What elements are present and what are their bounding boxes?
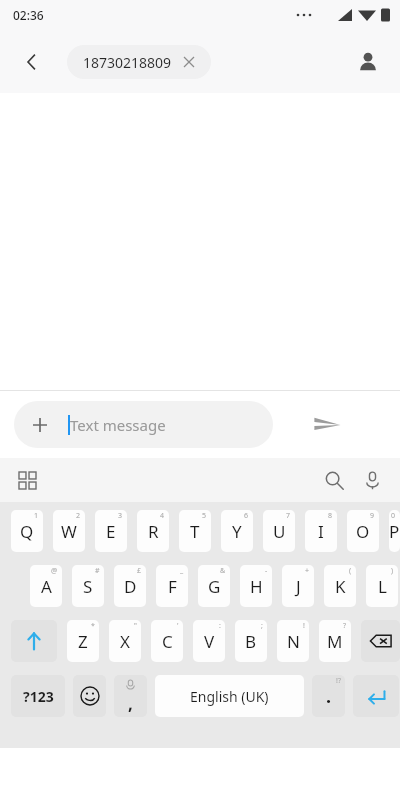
- button[interactable]: ;: [235, 620, 267, 662]
- staticText: C: [162, 630, 173, 653]
- staticText: _: [180, 566, 184, 576]
- staticText: 7: [286, 511, 291, 521]
- button[interactable]: English (UK): [155, 675, 304, 717]
- button[interactable]: Back: [14, 44, 50, 80]
- button[interactable]: *: [67, 620, 99, 662]
- staticText: 1: [34, 511, 39, 521]
- staticText: I: [318, 520, 324, 543]
- button[interactable]: :: [193, 620, 225, 662]
- staticText: ?123: [23, 687, 54, 706]
- staticText: ): [391, 566, 394, 576]
- staticText: @: [51, 566, 58, 576]
- staticText: D: [124, 575, 137, 598]
- staticText: #: [95, 566, 100, 576]
- staticText: 3: [118, 511, 123, 521]
- staticText: 4: [160, 511, 165, 521]
- staticText: A: [41, 575, 52, 598]
- staticText: F: [168, 575, 177, 598]
- staticText: &: [220, 566, 226, 576]
- button[interactable]: 5: [179, 510, 211, 552]
- button[interactable]: Clipboard: [9, 462, 45, 498]
- staticText: ;: [261, 621, 263, 631]
- staticText: :: [219, 621, 221, 631]
- staticText: .: [326, 684, 332, 709]
- button[interactable]: -: [240, 565, 272, 607]
- staticText: +: [305, 566, 310, 576]
- staticText: V: [204, 630, 215, 653]
- staticText: 02:36: [13, 7, 44, 23]
- button[interactable]: Enter: [353, 675, 399, 717]
- staticText: X: [120, 630, 130, 653]
- staticText: W: [61, 520, 77, 543]
- button[interactable]: 18730218809: [67, 45, 211, 79]
- staticText: R: [148, 520, 159, 543]
- button[interactable]: 0: [389, 510, 400, 552]
- button[interactable]: (: [324, 565, 356, 607]
- staticText: K: [335, 575, 346, 598]
- staticText: J: [296, 575, 301, 598]
- staticText: L: [378, 575, 387, 598]
- staticText: 8: [328, 511, 333, 521]
- button[interactable]: !?: [312, 675, 345, 717]
- button[interactable]: 6: [221, 510, 253, 552]
- staticText: S: [83, 575, 93, 598]
- staticText: T: [190, 520, 200, 543]
- button[interactable]: !: [277, 620, 309, 662]
- button[interactable]: Contact: [350, 44, 386, 80]
- button[interactable]: Send: [300, 398, 354, 452]
- staticText: ?: [343, 621, 347, 631]
- button[interactable]: £: [114, 565, 146, 607]
- button[interactable]: Voice input: [353, 461, 391, 499]
- button[interactable]: @: [30, 565, 62, 607]
- button[interactable]: ': [151, 620, 183, 662]
- staticText: *: [91, 621, 95, 631]
- staticText: M: [327, 630, 343, 653]
- button[interactable]: 8: [305, 510, 337, 552]
- staticText: 9: [370, 511, 375, 521]
- button[interactable]: Emoji: [73, 675, 106, 717]
- button[interactable]: 9: [347, 510, 379, 552]
- button[interactable]: #: [72, 565, 104, 607]
- staticText: Text message: [70, 415, 166, 435]
- staticText: ': [177, 621, 179, 631]
- button[interactable]: 4: [137, 510, 169, 552]
- staticText: 18730218809: [83, 53, 172, 72]
- button[interactable]: Backspace: [361, 620, 400, 662]
- button[interactable]: Shift: [11, 620, 57, 662]
- staticText: N: [287, 630, 300, 653]
- staticText: Z: [78, 630, 88, 653]
- staticText: E: [106, 520, 116, 543]
- button[interactable]: Search: [315, 461, 353, 499]
- staticText: English (UK): [190, 687, 269, 706]
- staticText: !: [303, 621, 305, 631]
- button[interactable]: 1: [11, 510, 43, 552]
- staticText: !?: [336, 676, 341, 686]
- button[interactable]: Text message: [14, 401, 273, 448]
- button[interactable]: 3: [95, 510, 127, 552]
- button[interactable]: ": [109, 620, 141, 662]
- staticText: 2: [76, 511, 81, 521]
- staticText: B: [245, 630, 257, 653]
- staticText: Q: [20, 520, 34, 543]
- staticText: 6: [244, 511, 249, 521]
- staticText: £: [137, 566, 142, 576]
- button[interactable]: _: [156, 565, 188, 607]
- staticText: O: [356, 520, 370, 543]
- button[interactable]: +: [282, 565, 314, 607]
- staticText: -: [265, 566, 268, 576]
- button[interactable]: ?: [319, 620, 351, 662]
- button[interactable]: 2: [53, 510, 85, 552]
- staticText: (: [349, 566, 352, 576]
- button[interactable]: 7: [263, 510, 295, 552]
- button[interactable]: &: [198, 565, 230, 607]
- staticText: 0: [391, 511, 396, 521]
- staticText: P: [389, 520, 400, 543]
- staticText: 5: [202, 511, 207, 521]
- button[interactable]: ): [366, 565, 398, 607]
- staticText: H: [250, 575, 263, 598]
- staticText: ": [134, 621, 137, 631]
- staticText: Y: [232, 520, 242, 543]
- staticText: U: [273, 520, 286, 543]
- button[interactable]: Comma, voice: [114, 675, 147, 717]
- button[interactable]: ?123: [11, 675, 65, 717]
